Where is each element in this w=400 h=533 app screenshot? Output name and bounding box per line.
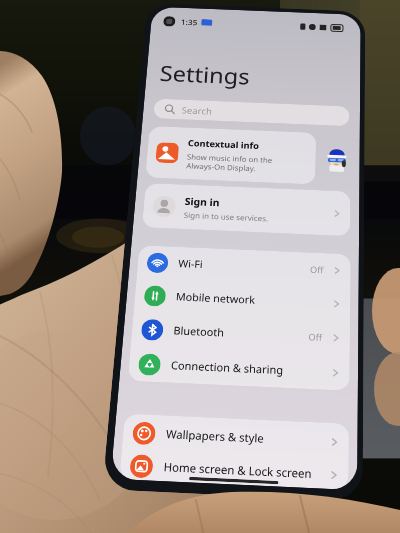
staticText: Sign in <box>184 195 221 209</box>
staticText: Home screen & Lock screen <box>163 459 329 482</box>
button[interactable]: Search <box>153 98 349 126</box>
button[interactable]: Home screen & Lock screen <box>119 450 349 490</box>
staticText: Search <box>181 104 213 117</box>
other: Open <box>329 437 339 447</box>
button[interactable]: Bluetooth <box>131 311 350 355</box>
button[interactable]: Contextual info <box>145 126 316 185</box>
staticText: Show music info on the Always-On Display… <box>186 151 273 174</box>
staticText: Mobile network <box>175 289 332 310</box>
button[interactable]: Connection & sharing <box>128 346 350 391</box>
other: Open <box>332 266 342 275</box>
staticText: Connection & sharing <box>170 358 331 379</box>
other: Open <box>329 470 339 480</box>
staticText: Sign in to use services. <box>183 209 269 223</box>
other: Open <box>331 333 341 343</box>
button[interactable]: Mobile network <box>134 278 350 321</box>
staticText: Wallpapers & style <box>166 426 330 449</box>
staticText: Wi-Fi <box>178 256 310 276</box>
other: Open <box>332 209 341 218</box>
staticText: Off <box>308 330 323 343</box>
staticText: Bluetooth <box>173 323 308 343</box>
staticText: Settings <box>159 58 251 90</box>
other: Open <box>331 368 340 378</box>
staticText: Off <box>310 263 324 275</box>
button[interactable]: Wallpapers & style <box>122 414 349 461</box>
button[interactable]: Wi-Fi <box>136 245 351 287</box>
staticText: Contextual info <box>188 137 260 152</box>
other: Open <box>332 299 341 308</box>
staticText: 1:35 <box>180 17 198 27</box>
button[interactable]: Sign in <box>142 183 350 236</box>
